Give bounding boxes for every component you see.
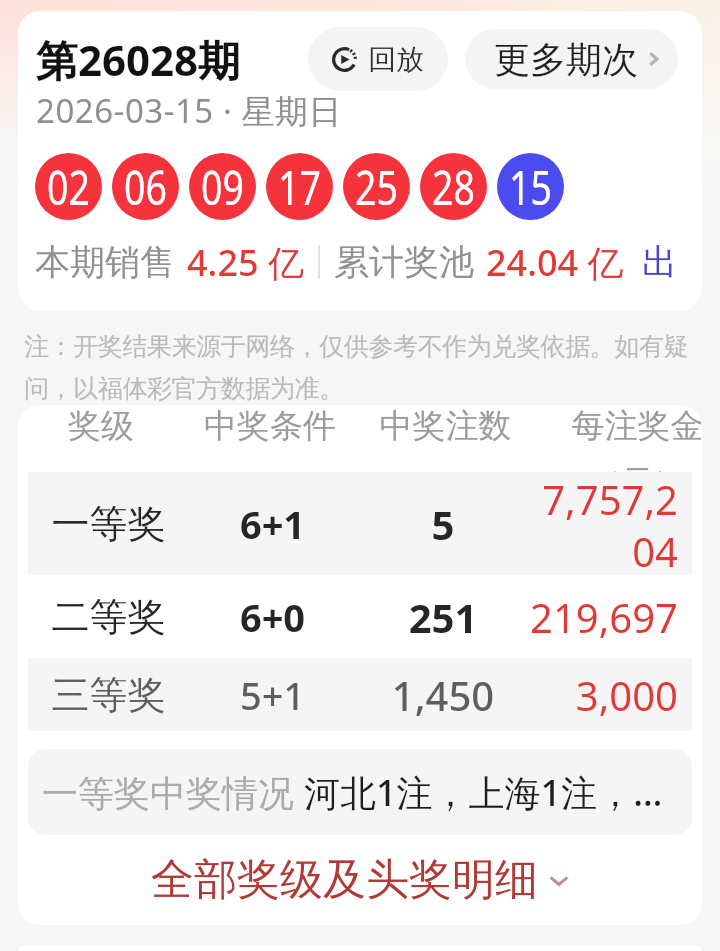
button[interactable]: 更多期次	[465, 29, 678, 89]
staticText: 中奖条件	[184, 405, 356, 447]
staticText: 回放	[368, 42, 424, 77]
staticText: 3,000	[575, 668, 678, 722]
staticText: 中奖注数	[356, 405, 535, 447]
staticText: 更多期次	[494, 37, 638, 82]
staticText: 02	[47, 154, 90, 219]
staticText: 6+0	[189, 591, 356, 643]
staticText: 6+1	[189, 498, 356, 550]
staticText: 06	[124, 154, 167, 219]
staticText: 二等奖	[28, 593, 189, 641]
button[interactable]: 全部奖级及头奖明细	[18, 835, 702, 925]
staticText: 一等奖	[28, 500, 189, 548]
other: 回放	[332, 47, 357, 72]
button[interactable]: 一等奖中奖情况	[28, 749, 692, 835]
staticText: 一等奖中奖情况	[42, 768, 304, 817]
staticText: 4.25 亿	[187, 238, 304, 287]
staticText: 15	[509, 154, 552, 219]
staticText: 2026-03-15 · 星期日	[36, 88, 343, 133]
staticText: 本期销售	[35, 240, 175, 284]
staticText: 全部奖级及头奖明细	[151, 853, 538, 907]
staticText: 注：开奖结果来源于网络，仅供参考不作为兑奖依据。如有疑问，以福体彩官方数据为准。	[24, 331, 696, 405]
staticText: 奖级	[18, 405, 184, 447]
staticText: 17	[278, 154, 321, 219]
staticText: 28	[432, 154, 475, 219]
staticText: 251	[356, 590, 530, 644]
staticText: 5+1	[189, 669, 356, 721]
staticText: 三等奖	[28, 671, 189, 719]
staticText: 219,697	[530, 590, 678, 644]
staticText: 1,450	[356, 668, 530, 722]
staticText: 5	[356, 497, 530, 551]
staticText: 出球顺序	[642, 240, 702, 284]
staticText: 每注奖金 （元）	[554, 405, 702, 472]
staticText: 25	[355, 154, 398, 219]
staticText: 第26028期	[36, 31, 241, 88]
staticText: 09	[201, 154, 244, 219]
button[interactable]: 三等奖	[28, 658, 692, 731]
staticText: 24.04 亿	[486, 238, 624, 287]
button[interactable]: 回放	[308, 27, 448, 91]
staticText: 累计奖池	[334, 240, 474, 284]
button[interactable]: 二等奖	[28, 575, 692, 658]
staticText: 河北1注，上海1注，…	[304, 768, 663, 817]
staticText: 7,757,2 04	[542, 472, 678, 575]
button[interactable]: 一等奖	[28, 472, 692, 575]
